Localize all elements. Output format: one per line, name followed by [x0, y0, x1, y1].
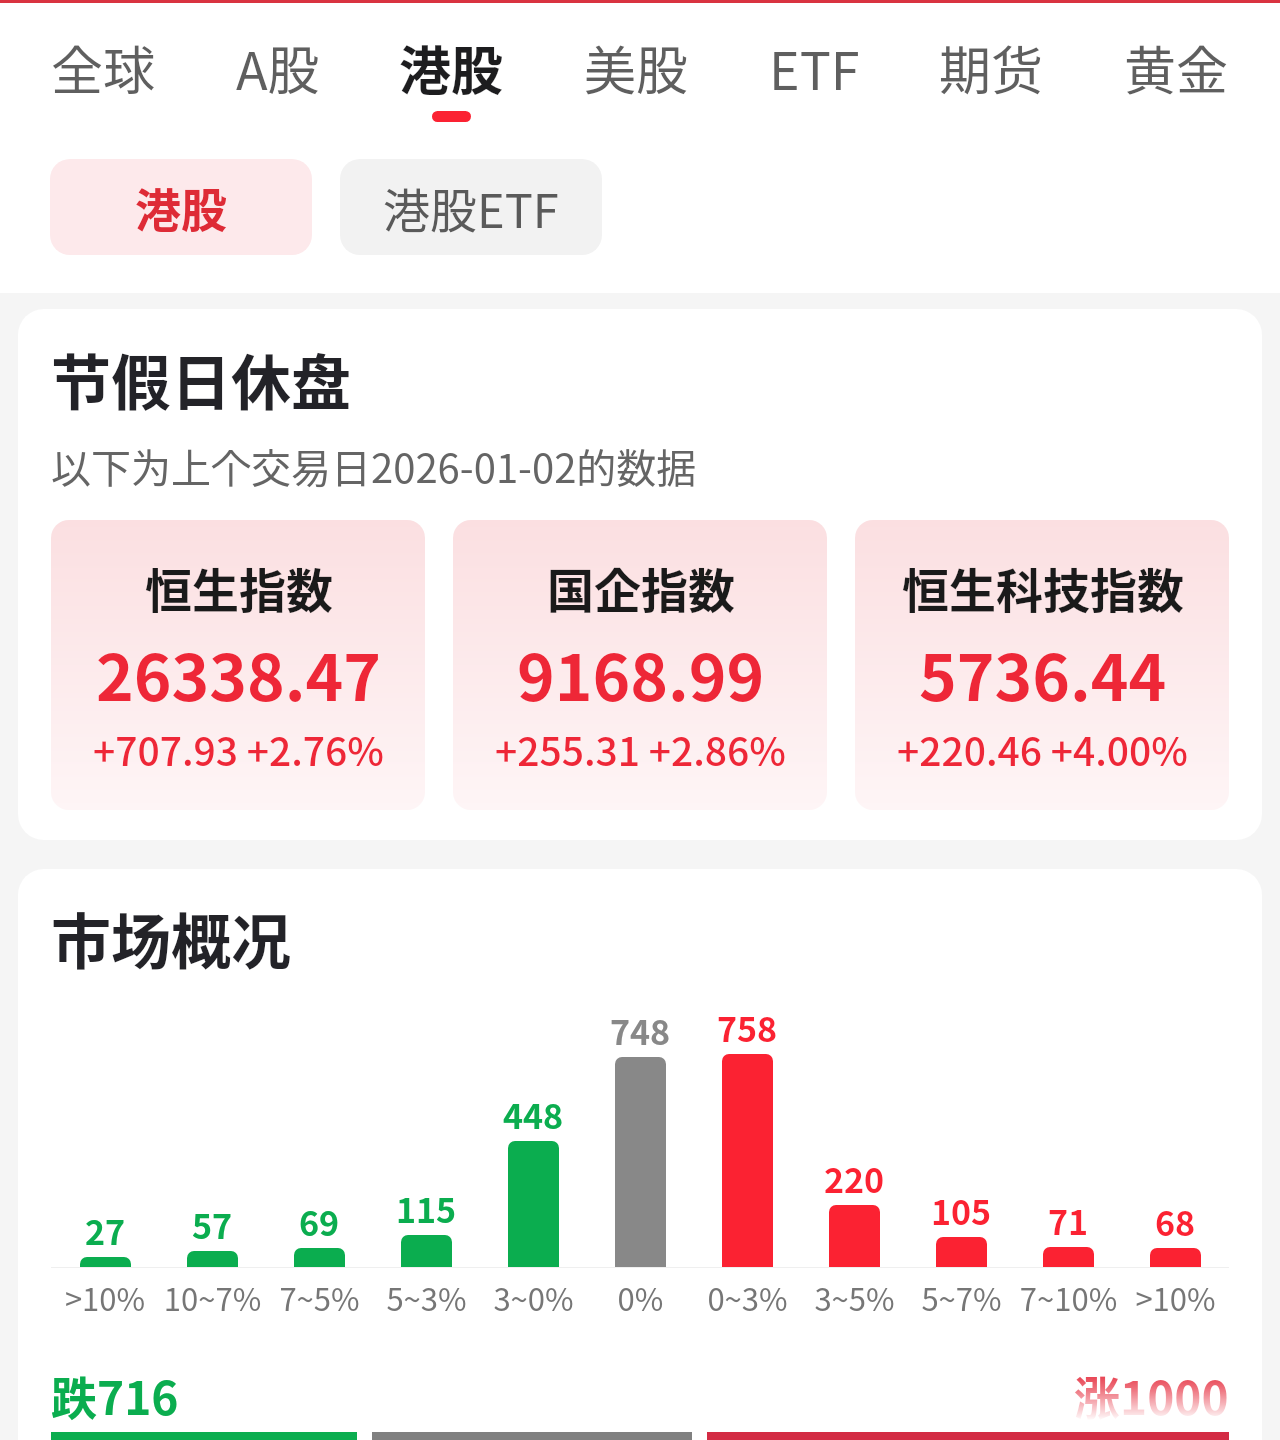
staticText: 港股ETF	[383, 173, 559, 241]
staticText: 68	[1155, 1197, 1196, 1246]
staticText: 国企指数	[547, 553, 735, 621]
staticText: 7~10%	[1015, 1275, 1122, 1320]
staticText: 以下为上个交易日2026-01-02的数据	[51, 437, 697, 495]
staticText: 105	[931, 1186, 992, 1235]
staticText: +707.93 +2.76%	[93, 721, 384, 777]
button[interactable]: 港股	[50, 159, 312, 255]
staticText: 0%	[587, 1275, 694, 1320]
button[interactable]: 美股	[584, 3, 689, 111]
staticText: 27	[85, 1206, 126, 1255]
staticText: 220	[824, 1154, 885, 1203]
staticText: 黄金	[1124, 30, 1229, 105]
button[interactable]: 国企指数	[453, 520, 827, 810]
staticText: 10~7%	[159, 1275, 266, 1320]
staticText: 涨1000	[1074, 1362, 1229, 1429]
button[interactable]: 港股	[399, 3, 504, 122]
button[interactable]: 黄金	[1124, 3, 1229, 111]
button[interactable]: 期货	[939, 3, 1044, 111]
staticText: 港股	[399, 30, 504, 105]
staticText: 港股	[135, 174, 227, 241]
staticText: 5~3%	[373, 1275, 480, 1320]
button[interactable]: 恒生指数	[51, 520, 425, 810]
button[interactable]: 全球	[51, 3, 156, 111]
staticText: 恒生科技指数	[902, 553, 1184, 621]
staticText: 全球	[51, 30, 156, 105]
button[interactable]: A股	[236, 3, 320, 111]
staticText: 71	[1048, 1196, 1089, 1245]
staticText: 748	[610, 1006, 671, 1055]
button[interactable]: 港股ETF	[340, 159, 602, 255]
staticText: 跌716	[51, 1362, 179, 1429]
staticText: 市场概况	[51, 894, 291, 981]
staticText: 69	[299, 1197, 340, 1246]
button[interactable]: ETF	[769, 3, 860, 111]
staticText: ETF	[769, 30, 860, 105]
staticText: 9168.99	[517, 627, 765, 720]
staticText: 恒生指数	[145, 553, 333, 621]
staticText: 美股	[584, 30, 689, 105]
staticText: 期货	[939, 30, 1044, 105]
staticText: 节假日休盘	[51, 335, 351, 422]
staticText: 0~3%	[694, 1275, 801, 1320]
staticText: >10%	[1122, 1275, 1229, 1320]
staticText: 448	[503, 1090, 564, 1139]
staticText: >10%	[51, 1275, 159, 1320]
staticText: 115	[396, 1184, 457, 1233]
staticText: 5~7%	[908, 1275, 1015, 1320]
staticText: 57	[192, 1200, 233, 1249]
staticText: 758	[717, 1003, 778, 1052]
staticText: A股	[236, 30, 320, 105]
staticText: +255.31 +2.86%	[495, 721, 786, 777]
staticText: +220.46 +4.00%	[897, 721, 1188, 777]
staticText: 5736.44	[919, 627, 1167, 720]
staticText: 3~0%	[480, 1275, 587, 1320]
button[interactable]: 恒生科技指数	[855, 520, 1229, 810]
staticText: 26338.47	[96, 627, 382, 720]
staticText: 7~5%	[266, 1275, 373, 1320]
staticText: 3~5%	[801, 1275, 908, 1320]
